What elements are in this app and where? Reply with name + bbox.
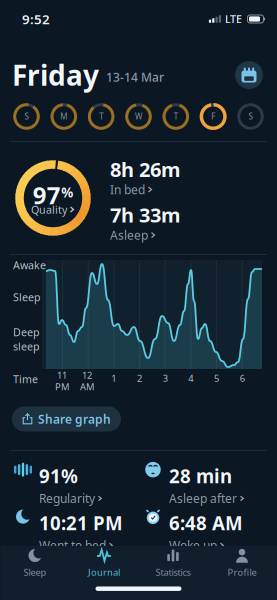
staticText: S: [248, 111, 252, 122]
staticText: Asleep: [110, 227, 148, 243]
button[interactable]: F: [200, 103, 227, 130]
button[interactable]: Calendar: [235, 61, 263, 89]
staticText: W: [135, 111, 142, 122]
staticText: 10:21 PM: [39, 511, 123, 535]
button[interactable]: 10:21 PM: [14, 517, 144, 547]
staticText: Journal: [88, 566, 120, 578]
staticText: 12: [82, 369, 92, 381]
staticText: Sleep: [23, 566, 46, 578]
button[interactable]: Journal: [69, 548, 138, 578]
button[interactable]: Statistics: [138, 548, 207, 578]
staticText: T: [174, 111, 178, 122]
button[interactable]: 6:48 AM: [144, 517, 277, 547]
staticText: 13-14 Mar: [106, 69, 164, 85]
staticText: 4: [188, 372, 193, 384]
staticText: 2: [137, 372, 142, 384]
staticText: 3: [163, 372, 168, 384]
staticText: In bed: [110, 181, 145, 197]
staticText: 91%: [39, 464, 78, 488]
button[interactable]: T: [162, 103, 189, 130]
staticText: 28 min: [169, 464, 232, 488]
button[interactable]: M: [50, 103, 77, 130]
staticText: 7h 33m: [110, 201, 181, 228]
staticText: M: [60, 111, 67, 122]
staticText: S: [24, 111, 28, 122]
button[interactable]: Share graph: [12, 406, 121, 431]
staticText: Share graph: [38, 411, 111, 427]
staticText: AM: [80, 380, 94, 393]
staticText: 9:52: [22, 10, 50, 28]
button[interactable]: 8h 26m: [110, 156, 181, 194]
staticText: 6: [240, 372, 245, 384]
button[interactable]: T: [88, 103, 115, 130]
button[interactable]: 97: [14, 159, 92, 237]
staticText: Statistics: [155, 566, 190, 578]
button[interactable]: W: [125, 103, 152, 130]
staticText: 97: [33, 179, 61, 211]
button[interactable]: 91%: [14, 470, 144, 500]
staticText: Deep: [13, 325, 40, 339]
staticText: sleep: [13, 339, 40, 353]
staticText: 5: [214, 372, 219, 384]
staticText: Sleep: [13, 290, 41, 304]
button[interactable]: 28 min: [144, 470, 277, 500]
staticText: Quality: [31, 202, 67, 217]
staticText: Profile: [227, 566, 256, 578]
button[interactable]: S: [13, 103, 40, 130]
button[interactable]: 7h 33m: [110, 201, 181, 240]
staticText: 6:48 AM: [169, 511, 243, 535]
staticText: PM: [55, 380, 69, 393]
staticText: T: [99, 111, 103, 122]
staticText: Friday: [12, 56, 99, 94]
staticText: Regularity: [39, 490, 95, 506]
button[interactable]: S: [237, 103, 264, 130]
staticText: Asleep after: [169, 490, 237, 506]
staticText: 8h 26m: [110, 156, 181, 182]
staticText: 11: [57, 369, 67, 381]
button[interactable]: Sleep: [0, 548, 69, 578]
staticText: F: [211, 111, 215, 122]
staticText: Time: [13, 372, 38, 386]
staticText: LTE: [225, 12, 242, 26]
staticText: 1: [111, 372, 116, 384]
staticText: Awake: [13, 258, 46, 272]
staticText: Went to bed: [39, 537, 106, 553]
button[interactable]: Profile: [207, 548, 276, 578]
staticText: Woke up: [169, 537, 217, 553]
staticText: %: [61, 184, 73, 201]
